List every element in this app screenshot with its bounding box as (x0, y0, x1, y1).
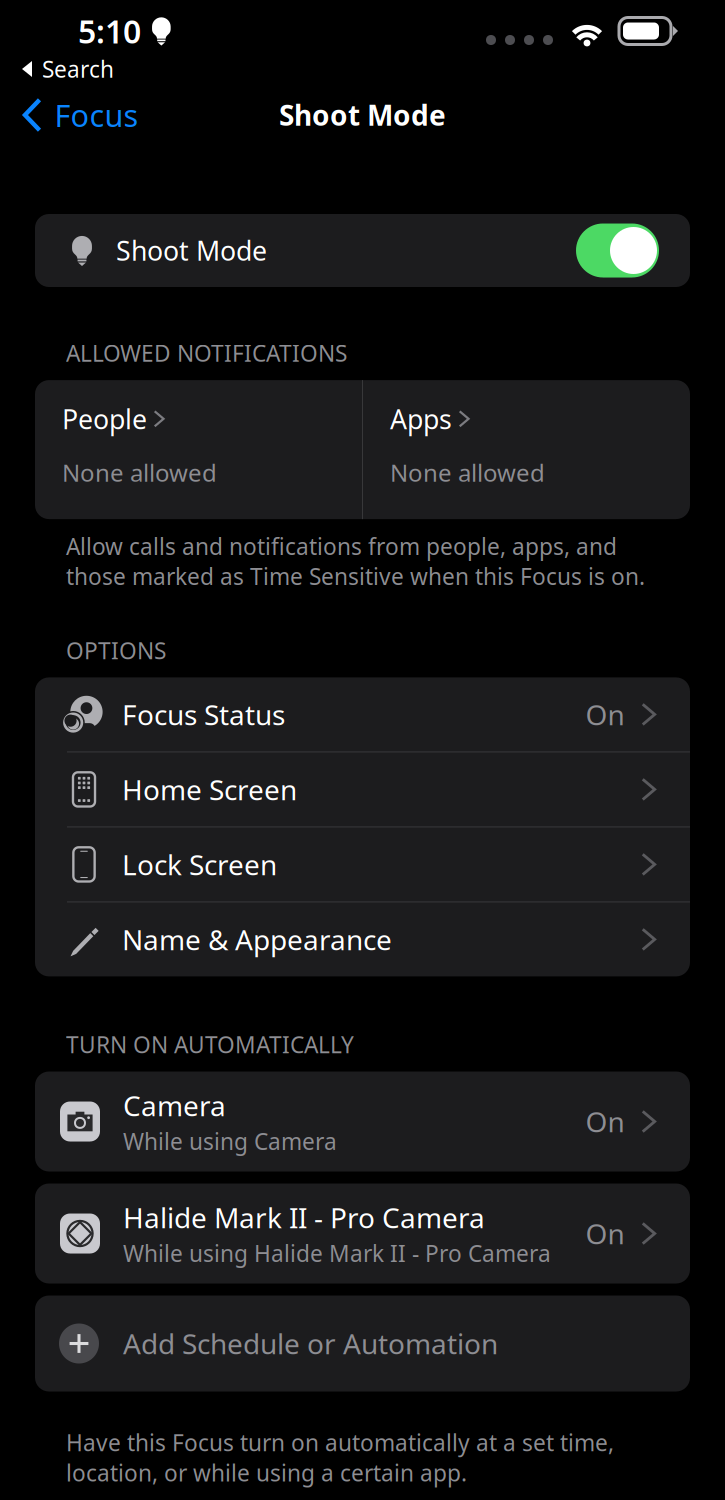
staticText: On (585, 1103, 624, 1140)
staticText: Search (42, 54, 114, 84)
staticText: Allow calls and notifications from peopl… (66, 531, 645, 591)
staticText: Halide Mark II - Pro Camera (123, 1199, 485, 1236)
staticText: People (62, 401, 147, 436)
button[interactable]: Lock Screen (35, 827, 690, 902)
staticText: None allowed (62, 456, 217, 488)
button[interactable]: Add Schedule or Automation (35, 1295, 690, 1391)
staticText: Home Screen (122, 771, 297, 808)
staticText: 5:10 (78, 10, 141, 52)
staticText: Shoot Mode (279, 96, 446, 134)
staticText: TURN ON AUTOMATICALLY (66, 1029, 354, 1059)
staticText: Shoot Mode (116, 233, 267, 268)
staticText: Name & Appearance (122, 921, 392, 958)
staticText: Focus (54, 95, 138, 135)
staticText: While using Halide Mark II - Pro Camera (123, 1238, 551, 1268)
button[interactable]: Home Screen (35, 752, 690, 827)
button[interactable]: Focus (0, 86, 138, 144)
staticText: Lock Screen (122, 846, 277, 883)
staticText: On (585, 1215, 624, 1252)
button[interactable]: Name & Appearance (35, 902, 690, 976)
staticText: ALLOWED NOTIFICATIONS (66, 338, 347, 368)
staticText: OPTIONS (66, 635, 166, 665)
button[interactable]: Focus Status (35, 677, 690, 752)
staticText: Camera (123, 1087, 226, 1124)
staticText: Have this Focus turn on automatically at… (66, 1427, 614, 1488)
button[interactable]: Shoot Mode on (576, 223, 659, 277)
staticText: While using Camera (123, 1126, 337, 1156)
button[interactable]: People (35, 380, 362, 519)
staticText: Apps (390, 401, 452, 436)
staticText: Focus Status (122, 696, 285, 733)
staticText: On (585, 696, 624, 733)
button[interactable]: Camera (35, 1071, 690, 1171)
button[interactable]: Apps (363, 380, 690, 519)
button[interactable]: Halide Mark II - Pro Camera (35, 1183, 690, 1283)
staticText: Add Schedule or Automation (123, 1325, 498, 1362)
staticText: None allowed (390, 456, 545, 488)
